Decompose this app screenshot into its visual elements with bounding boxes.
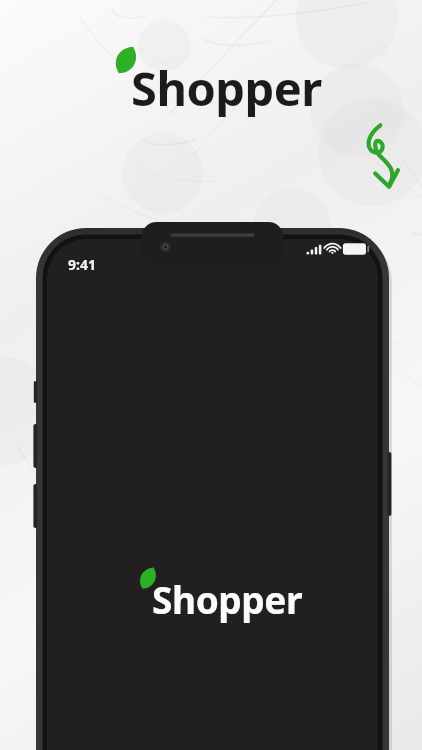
staticText: Shopper bbox=[131, 56, 322, 120]
staticText: 9:41 bbox=[68, 255, 96, 274]
button[interactable]: Shopper bbox=[152, 574, 303, 624]
